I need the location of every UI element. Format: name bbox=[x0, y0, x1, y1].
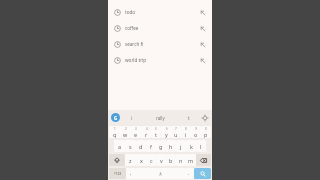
staticText: x bbox=[140, 157, 143, 164]
button[interactable]: v bbox=[156, 154, 166, 166]
button[interactable]: 0 bbox=[201, 126, 211, 138]
button[interactable]: h bbox=[166, 140, 176, 152]
staticText: r bbox=[145, 131, 148, 138]
staticText: y bbox=[165, 131, 168, 138]
other: Insert todo bbox=[199, 9, 206, 16]
button[interactable]: 3 bbox=[131, 126, 141, 138]
button[interactable]: j bbox=[176, 140, 186, 152]
button[interactable]: k bbox=[186, 140, 196, 152]
staticText: w bbox=[123, 131, 128, 138]
button[interactable]: 8 bbox=[181, 126, 191, 138]
staticText: 5 bbox=[155, 127, 157, 131]
staticText: search fi bbox=[125, 41, 199, 47]
button[interactable]: world trip bbox=[108, 52, 212, 68]
staticText: d bbox=[139, 143, 143, 150]
staticText: todo bbox=[125, 9, 199, 15]
button[interactable]: f bbox=[146, 140, 156, 152]
staticText: 0 bbox=[205, 127, 207, 131]
staticText: 4 bbox=[146, 127, 148, 131]
button[interactable]: Shift bbox=[109, 154, 125, 166]
staticText: l bbox=[200, 143, 202, 150]
button[interactable]: z bbox=[125, 154, 136, 166]
button[interactable]: todo bbox=[108, 4, 212, 20]
button[interactable]: . bbox=[184, 168, 194, 179]
staticText: 9 bbox=[195, 127, 197, 131]
staticText: k bbox=[190, 143, 193, 150]
staticText: a bbox=[118, 143, 122, 150]
button[interactable]: i bbox=[120, 110, 143, 125]
button[interactable]: 2 bbox=[120, 126, 131, 138]
other: Insert search fi bbox=[199, 41, 206, 48]
button[interactable]: Keyboard settings bbox=[200, 113, 209, 122]
staticText: , bbox=[130, 170, 132, 177]
staticText: i bbox=[131, 115, 133, 121]
button[interactable]: g bbox=[156, 140, 166, 152]
staticText: p bbox=[204, 131, 208, 138]
other: Insert coffee bbox=[199, 25, 206, 32]
staticText: 2 bbox=[125, 127, 127, 131]
staticText: 6 bbox=[166, 127, 168, 131]
button[interactable]: n bbox=[176, 154, 186, 166]
button[interactable]: m bbox=[186, 154, 196, 166]
button[interactable]: Symbols bbox=[109, 168, 126, 179]
staticText: world trip bbox=[125, 57, 199, 63]
staticText: t bbox=[188, 115, 190, 121]
staticText: v bbox=[160, 157, 163, 164]
staticText: j bbox=[180, 143, 182, 150]
other: Insert world trip bbox=[199, 57, 206, 64]
staticText: t bbox=[155, 131, 157, 138]
staticText: u bbox=[174, 131, 178, 138]
button[interactable]: 7 bbox=[171, 126, 181, 138]
button[interactable]: rally bbox=[143, 110, 177, 125]
staticText: . bbox=[188, 170, 190, 177]
button[interactable]: 6 bbox=[161, 126, 171, 138]
button[interactable]: Space bbox=[136, 168, 184, 179]
button[interactable]: a bbox=[114, 140, 125, 152]
button[interactable]: 5 bbox=[151, 126, 161, 138]
button[interactable]: x bbox=[136, 154, 146, 166]
staticText: i bbox=[185, 131, 187, 138]
button[interactable]: c bbox=[146, 154, 156, 166]
staticText: s bbox=[129, 143, 132, 150]
staticText: n bbox=[179, 157, 183, 164]
button[interactable]: Search bbox=[194, 168, 211, 179]
staticText: rally bbox=[156, 115, 165, 121]
button[interactable]: Google bbox=[111, 113, 120, 122]
staticText: G bbox=[114, 115, 118, 121]
staticText: o bbox=[194, 131, 198, 138]
button[interactable]: 9 bbox=[191, 126, 201, 138]
staticText: 8 bbox=[185, 127, 187, 131]
staticText: z bbox=[129, 157, 132, 164]
staticText: q bbox=[113, 131, 117, 138]
staticText: b bbox=[169, 157, 173, 164]
staticText: m bbox=[188, 157, 194, 164]
staticText: g bbox=[159, 143, 163, 150]
button[interactable]: s bbox=[125, 140, 136, 152]
button[interactable]: d bbox=[136, 140, 146, 152]
button[interactable]: , bbox=[126, 168, 136, 179]
staticText: coffee bbox=[125, 25, 199, 31]
button[interactable]: l bbox=[196, 140, 206, 152]
button[interactable]: 1 bbox=[109, 126, 120, 138]
staticText: c bbox=[150, 157, 153, 164]
staticText: 7 bbox=[175, 127, 177, 131]
staticText: f bbox=[150, 143, 152, 150]
staticText: ?123 bbox=[114, 171, 122, 176]
staticText: e bbox=[134, 131, 138, 138]
button[interactable]: t bbox=[177, 110, 200, 125]
button[interactable]: b bbox=[166, 154, 176, 166]
button[interactable]: coffee bbox=[108, 20, 212, 36]
staticText: h bbox=[169, 143, 173, 150]
button[interactable]: 4 bbox=[141, 126, 151, 138]
staticText: 3 bbox=[135, 127, 137, 131]
button[interactable]: Backspace bbox=[196, 154, 211, 166]
button[interactable]: search fi bbox=[108, 36, 212, 52]
staticText: 1 bbox=[114, 127, 116, 131]
